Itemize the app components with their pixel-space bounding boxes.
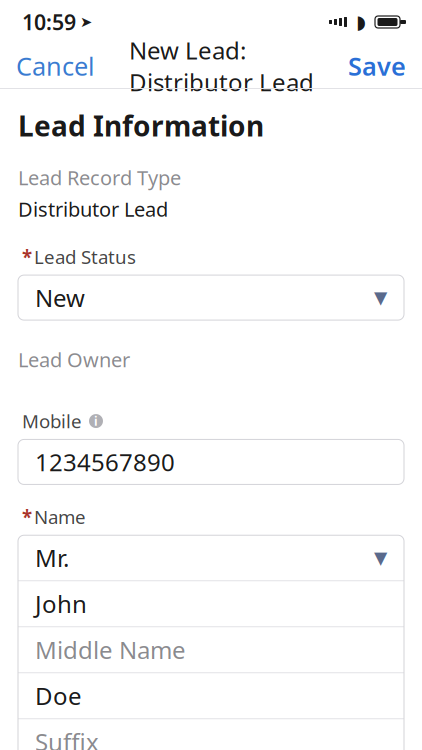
button[interactable]: Cancel (0, 44, 111, 88)
staticText: Mobile (22, 409, 82, 433)
staticText: * (22, 504, 32, 529)
button[interactable]: 1234567890 (18, 439, 404, 484)
staticText: Name (34, 504, 86, 529)
staticText: Cancel (16, 49, 95, 83)
button[interactable]: Suffix (18, 719, 404, 750)
staticText: Middle Name (35, 634, 186, 666)
staticText: New (35, 282, 85, 314)
staticText: ➤ (80, 14, 92, 30)
staticText: 1234567890 (35, 446, 175, 478)
staticText: Lead Information (18, 107, 264, 144)
staticText: Lead Status (34, 244, 136, 269)
staticText: 10:59 (22, 8, 76, 36)
staticText: Mr. (35, 542, 69, 574)
staticText: John (35, 588, 87, 620)
staticText: i (94, 413, 98, 429)
staticText: Save (348, 49, 406, 83)
button[interactable]: John (18, 581, 404, 626)
staticText: ▼ (374, 548, 387, 568)
staticText: ▼ (374, 288, 387, 307)
button[interactable]: Save (332, 44, 422, 88)
button[interactable]: Doe (18, 673, 404, 718)
button[interactable]: New (18, 275, 404, 320)
staticText: New Lead: Distributor Lead (129, 34, 314, 98)
button[interactable]: Mr. (18, 535, 404, 580)
staticText: Lead Record Type (18, 164, 181, 191)
staticText: * (22, 244, 32, 269)
staticText: Distributor Lead (18, 196, 168, 222)
button[interactable]: Middle Name (18, 627, 404, 672)
staticText: Lead Owner (18, 346, 130, 373)
staticText: ◗ (356, 11, 366, 33)
staticText: Doe (35, 680, 82, 712)
staticText: Suffix (35, 726, 99, 750)
